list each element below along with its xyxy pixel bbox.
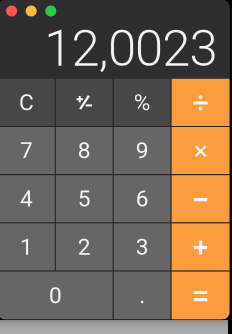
button[interactable]: Minimize [26,5,37,16]
button[interactable]: Equals [172,272,229,319]
button[interactable]: Add [172,223,229,271]
staticText: 2 [78,234,91,260]
button[interactable]: 9 [114,127,171,174]
staticText: . [139,282,145,309]
button[interactable]: Decimal point [114,272,171,319]
staticText: 12,0023 [44,19,217,78]
staticText: 3 [136,234,149,260]
staticText: 6 [136,185,149,212]
staticText: 4 [20,185,33,212]
button[interactable]: Subtract [172,175,229,222]
staticText: 1 [20,234,33,260]
button[interactable]: 3 [114,223,171,271]
button[interactable]: 7 [0,127,55,174]
staticText: 5 [78,185,91,212]
button[interactable]: 8 [56,127,113,174]
staticText: 7 [20,137,33,164]
button[interactable]: 0 [0,272,113,319]
button[interactable]: 4 [0,175,55,222]
button[interactable]: 5 [56,175,113,222]
button[interactable]: 2 [56,223,113,271]
staticText: 8 [78,137,91,164]
button[interactable]: 1 [0,223,55,271]
button[interactable]: Zoom [45,5,56,16]
button[interactable]: Close [6,5,17,16]
button[interactable]: Percent [114,79,171,126]
button[interactable]: Plus minus [56,79,113,126]
staticText: % [134,89,151,116]
staticText: C [19,89,34,116]
staticText: 0 [49,282,62,309]
button[interactable]: Multiply [172,127,229,174]
button[interactable]: 6 [114,175,171,222]
button[interactable]: Divide [172,79,229,126]
button[interactable]: Clear [0,79,55,126]
staticText: 9 [136,137,149,164]
